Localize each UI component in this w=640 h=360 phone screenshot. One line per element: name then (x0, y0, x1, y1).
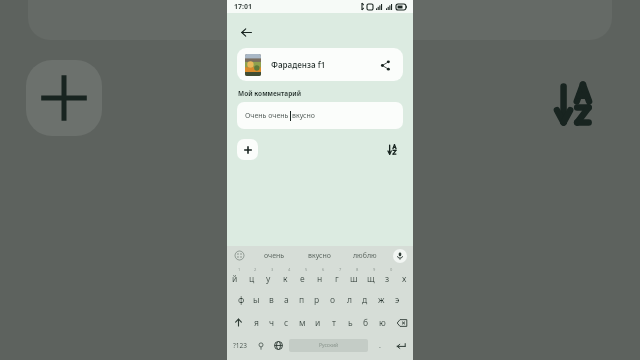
button[interactable]: а (279, 288, 294, 311)
button[interactable]: ж (373, 288, 389, 311)
staticText: ю (379, 317, 386, 329)
staticText: ф (238, 294, 245, 306)
staticText: ж (378, 294, 385, 306)
button[interactable]: м (294, 311, 310, 334)
button[interactable]: Add (237, 139, 258, 160)
staticText: 0 (390, 267, 393, 272)
button[interactable]: ?123 (227, 334, 253, 357)
staticText: с (284, 317, 289, 329)
staticText: п (299, 294, 305, 306)
button[interactable]: Фараденза f1 (237, 48, 403, 81)
staticText: 1 (238, 267, 241, 272)
staticText: 2 (254, 267, 257, 272)
staticText: 4 (288, 267, 291, 272)
staticText: э (395, 294, 400, 306)
staticText: 7 (339, 267, 342, 272)
staticText: ш (350, 273, 358, 285)
button[interactable]: л (341, 288, 357, 311)
staticText: Русский (319, 342, 339, 349)
button[interactable]: ф (234, 288, 249, 311)
button[interactable]: в (264, 288, 279, 311)
staticText: вкусно (292, 111, 315, 121)
button[interactable]: Shift (227, 311, 249, 334)
staticText: а (284, 294, 289, 306)
button[interactable]: 4 (277, 265, 294, 288)
staticText: вкусно (308, 251, 331, 261)
staticText: г (335, 273, 339, 285)
staticText: Мой комментарий (238, 89, 302, 98)
button[interactable]: п (294, 288, 309, 311)
staticText: 6 (322, 267, 325, 272)
staticText: ы (253, 294, 260, 306)
button[interactable]: Enter (389, 334, 413, 357)
staticText: д (362, 294, 368, 306)
button[interactable]: я (249, 311, 264, 334)
staticText: Очень очень (245, 111, 289, 121)
button[interactable]: э (389, 288, 405, 311)
staticText: люблю (353, 251, 377, 261)
staticText: о (330, 294, 336, 306)
staticText: ?123 (233, 341, 247, 350)
button[interactable]: х (396, 265, 413, 288)
staticText: . (379, 341, 381, 351)
staticText: б (363, 317, 369, 329)
button[interactable]: д (357, 288, 373, 311)
button[interactable]: б (358, 311, 374, 334)
button[interactable]: 8 (345, 265, 362, 288)
staticText: щ (367, 273, 375, 285)
button[interactable]: 2 (243, 265, 260, 288)
staticText: 5 (305, 267, 308, 272)
button[interactable]: Back (235, 21, 257, 43)
button[interactable]: 6 (311, 265, 328, 288)
staticText: 3 (271, 267, 274, 272)
button[interactable]: ю (374, 311, 390, 334)
staticText: к (283, 273, 288, 285)
staticText: н (317, 273, 323, 285)
staticText: х (402, 273, 407, 285)
staticText: р (314, 294, 320, 306)
button[interactable]: 5 (294, 265, 311, 288)
button[interactable]: ь (342, 311, 358, 334)
staticText: очень (264, 251, 285, 261)
staticText: 17:01 (234, 2, 252, 12)
button[interactable]: р (309, 288, 325, 311)
button[interactable]: Share (375, 55, 395, 75)
button[interactable]: люблю (342, 246, 387, 265)
button[interactable]: Sort A to Z (382, 139, 403, 160)
button[interactable]: 3 (260, 265, 277, 288)
staticText: з (385, 273, 390, 285)
button[interactable]: Emoji (227, 246, 251, 265)
staticText: л (347, 294, 352, 306)
button[interactable]: вкусно (297, 246, 342, 265)
button[interactable]: 1 (227, 265, 243, 288)
button[interactable]: Voice input (387, 246, 413, 265)
staticText: е (300, 273, 305, 285)
staticText: у (266, 273, 271, 285)
button[interactable]: и (310, 311, 326, 334)
button[interactable]: т (326, 311, 342, 334)
button[interactable]: очень (251, 246, 297, 265)
staticText: 8 (356, 267, 359, 272)
staticText: Фараденза f1 (271, 59, 375, 70)
staticText: ц (249, 273, 255, 285)
staticText: й (232, 273, 238, 285)
staticText: 9 (373, 267, 376, 272)
staticText: в (269, 294, 274, 306)
button[interactable]: 0 (379, 265, 396, 288)
staticText: я (254, 317, 259, 329)
button[interactable]: Очень очень (237, 102, 403, 129)
button[interactable]: Change language (269, 334, 287, 357)
button[interactable]: ы (249, 288, 264, 311)
button[interactable]: Русский (289, 339, 368, 352)
button[interactable]: с (279, 311, 294, 334)
button[interactable]: о (325, 288, 341, 311)
button[interactable]: Settings (253, 334, 269, 357)
button[interactable]: ч (264, 311, 279, 334)
button[interactable]: Backspace (390, 311, 413, 334)
staticText: и (315, 317, 321, 329)
button[interactable]: 9 (362, 265, 379, 288)
staticText: т (332, 317, 336, 329)
button[interactable]: 7 (328, 265, 345, 288)
staticText: м (299, 317, 306, 329)
